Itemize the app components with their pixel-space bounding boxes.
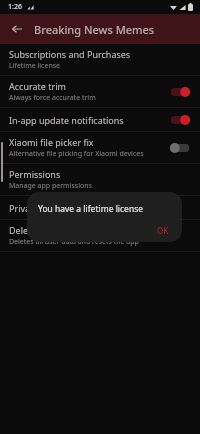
button[interactable]: Accurate trim xyxy=(0,76,200,107)
staticText: Accurate trim xyxy=(9,80,66,92)
button[interactable]: OK xyxy=(150,222,176,239)
staticText: Breaking News Memes xyxy=(34,22,155,37)
button[interactable]: Privacy policy xyxy=(0,196,200,219)
staticText: 1:26 xyxy=(8,2,22,12)
staticText: Permissions xyxy=(9,168,61,180)
staticText: Manage app permissions xyxy=(9,181,92,191)
staticText: Lifetime license xyxy=(9,61,61,71)
button[interactable]: Subscriptions and Purchases xyxy=(0,44,200,75)
staticText: Xiaomi file picker fix xyxy=(9,136,94,148)
button[interactable]: Toggle on xyxy=(169,85,191,99)
staticText: Privacy policy xyxy=(9,202,66,214)
staticText: Alternative file picking for Xiaomi devi… xyxy=(9,149,144,159)
button[interactable]: Toggle on xyxy=(169,113,191,127)
staticText: Subscriptions and Purchases xyxy=(9,48,131,60)
staticText: Always force accurate trim xyxy=(9,93,96,103)
staticText: OK xyxy=(157,225,169,236)
staticText: In-app update notifications xyxy=(9,114,124,126)
button[interactable]: Delete all data xyxy=(0,220,200,251)
button[interactable]: Xiaomi file picker fix xyxy=(0,132,200,163)
staticText: Deletes all user data and resets the app xyxy=(9,237,139,247)
staticText: You have a lifetime license xyxy=(38,203,144,215)
staticText: Delete all data xyxy=(9,224,70,236)
button[interactable]: In-app update notifications xyxy=(0,108,200,131)
button[interactable]: Toggle off xyxy=(169,141,191,155)
button[interactable]: Back xyxy=(5,17,29,41)
button[interactable]: Permissions xyxy=(0,164,200,195)
